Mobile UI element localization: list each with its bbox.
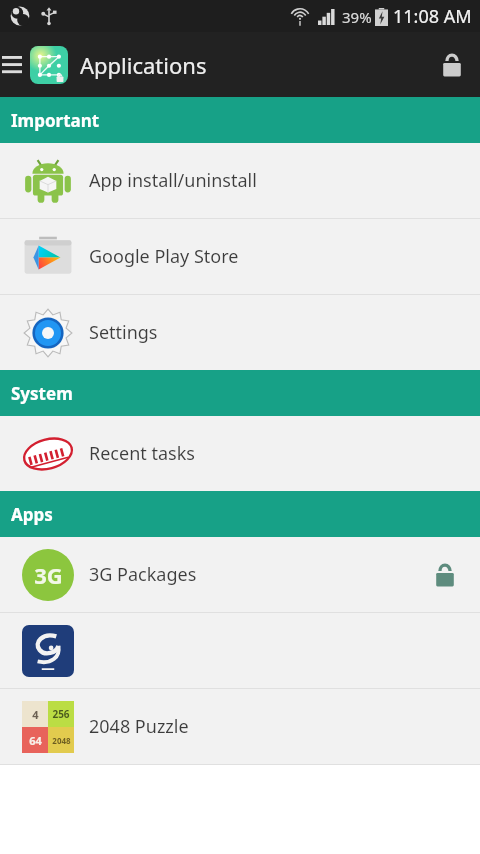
staticText: Important: [11, 109, 100, 132]
button[interactable]: Recent tasks: [0, 416, 480, 491]
staticText: 4: [32, 707, 39, 722]
staticText: 39%: [342, 7, 372, 27]
button[interactable]: 4: [0, 689, 480, 764]
staticText: System: [11, 382, 73, 405]
staticText: App install/uninstall: [89, 168, 257, 193]
button[interactable]: 3G: [0, 537, 480, 612]
staticText: 2048: [52, 735, 71, 746]
staticText: Settings: [89, 320, 158, 345]
button[interactable]: Lock: [424, 32, 480, 97]
button[interactable]: App install/uninstall: [0, 143, 480, 218]
staticText: Applications: [80, 50, 207, 80]
staticText: 2048 Puzzle: [89, 714, 189, 739]
staticText: 11:08 AM: [393, 4, 472, 29]
staticText: Apps: [11, 503, 53, 526]
button[interactable]: [0, 613, 480, 688]
button[interactable]: App icon: [30, 46, 68, 84]
staticText: 64: [29, 733, 42, 748]
staticText: 3G Packages: [89, 562, 197, 587]
button[interactable]: Open navigation drawer: [0, 32, 24, 97]
staticText: 256: [52, 707, 70, 721]
button[interactable]: Settings: [0, 295, 480, 370]
button[interactable]: Google Play Store: [0, 219, 480, 294]
staticText: Recent tasks: [89, 441, 195, 466]
staticText: Google Play Store: [89, 244, 239, 269]
staticText: 3G: [34, 560, 63, 590]
